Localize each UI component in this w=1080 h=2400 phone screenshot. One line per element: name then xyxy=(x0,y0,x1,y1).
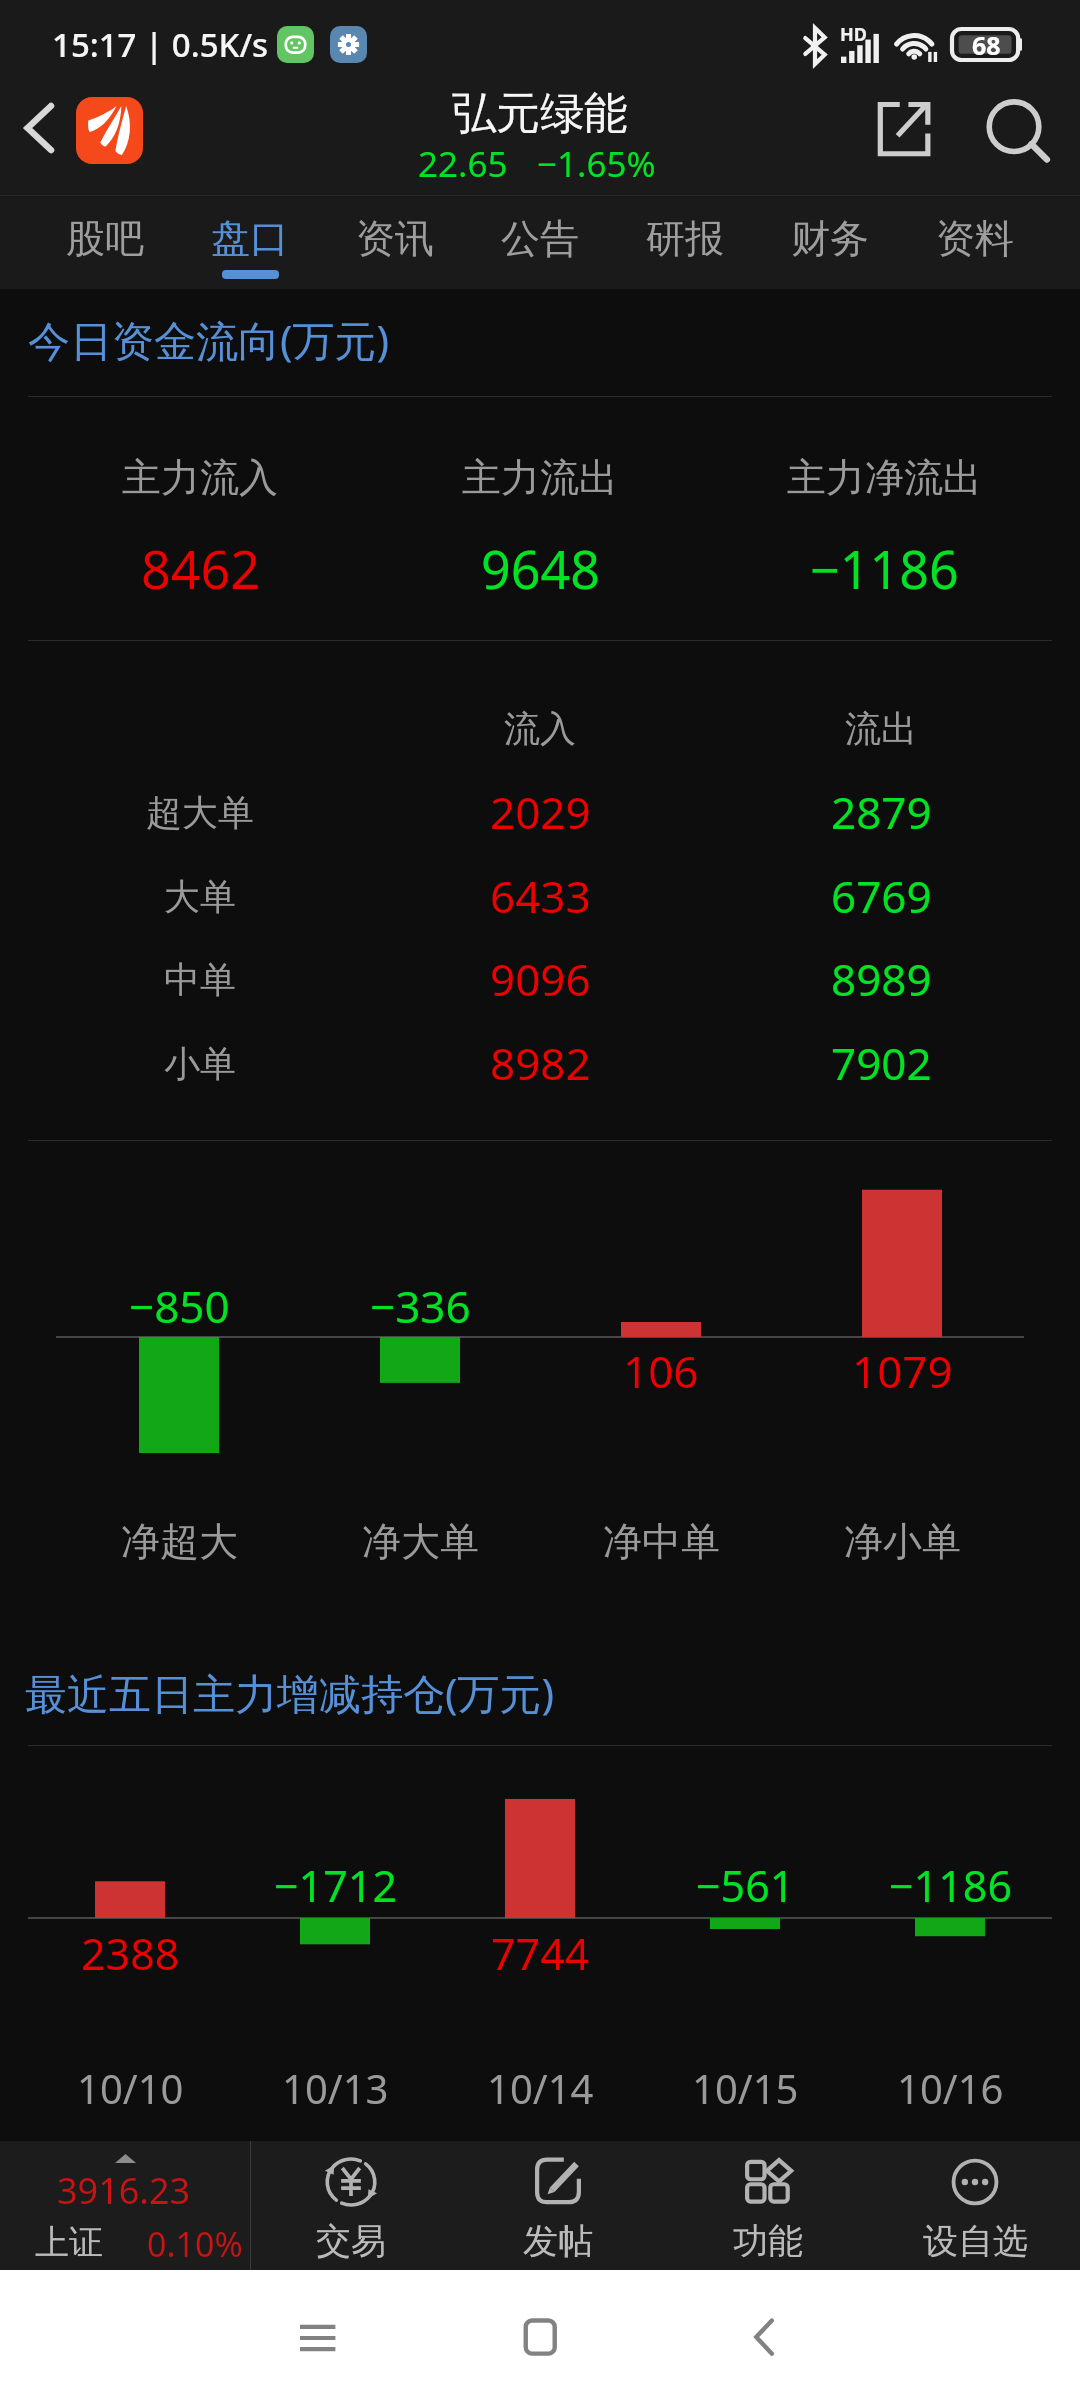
button[interactable]: App home xyxy=(76,97,143,164)
staticText: 9096 xyxy=(490,949,591,1009)
staticText: HD xyxy=(840,22,867,47)
button[interactable]: Recents xyxy=(205,2285,429,2390)
button[interactable]: 资讯 xyxy=(323,195,467,290)
staticText: 106 xyxy=(623,1341,699,1401)
staticText: 6433 xyxy=(490,866,591,926)
staticText: 流入 xyxy=(504,706,576,751)
staticText: 10/16 xyxy=(897,2061,1004,2115)
staticText: 超大单 xyxy=(146,790,254,835)
staticText: −336 xyxy=(370,1276,471,1336)
button[interactable]: 交易 xyxy=(251,2141,451,2270)
button[interactable]: Home xyxy=(428,2285,652,2390)
button[interactable]: 盘口 xyxy=(178,195,322,290)
button[interactable]: 3916.23 xyxy=(0,2141,250,2270)
staticText: 财务 xyxy=(791,214,869,263)
staticText: 1079 xyxy=(852,1341,953,1401)
staticText: 小单 xyxy=(164,1041,236,1086)
staticText: 10/13 xyxy=(282,2061,389,2115)
staticText: 2388 xyxy=(81,1924,180,1983)
staticText: 发帖 xyxy=(523,2219,593,2263)
staticText: 交易 xyxy=(316,2219,386,2263)
staticText: 设自选 xyxy=(923,2219,1028,2263)
staticText: 资料 xyxy=(936,214,1014,263)
staticText: 弘元绿能 xyxy=(452,86,628,141)
staticText: 7744 xyxy=(491,1924,590,1983)
staticText: 10/10 xyxy=(77,2061,184,2115)
staticText: 7902 xyxy=(831,1033,932,1093)
button[interactable]: Search xyxy=(969,93,1069,168)
button[interactable]: Back xyxy=(0,90,78,165)
button[interactable]: 资料 xyxy=(903,195,1047,290)
button[interactable]: Share xyxy=(856,90,950,165)
button[interactable]: 功能 xyxy=(668,2141,868,2270)
staticText: 净小单 xyxy=(844,1517,961,1566)
button[interactable]: 发帖 xyxy=(458,2141,658,2270)
button[interactable]: 设自选 xyxy=(875,2141,1075,2270)
staticText: 22.65 xyxy=(418,140,508,188)
button[interactable]: 公告 xyxy=(468,195,612,290)
staticText: 今日资金流向(万元) xyxy=(28,311,390,368)
staticText: 上证 xyxy=(35,2221,103,2264)
staticText: 0.10% xyxy=(147,2221,243,2267)
button[interactable]: 财务 xyxy=(758,195,902,290)
staticText: 公告 xyxy=(501,214,579,263)
staticText: 净大单 xyxy=(362,1517,479,1566)
staticText: 净超大 xyxy=(121,1517,238,1566)
staticText: 2029 xyxy=(490,782,591,842)
staticText: 主力流出 xyxy=(462,453,618,502)
staticText: −561 xyxy=(696,1856,795,1915)
staticText: −1712 xyxy=(274,1856,397,1915)
staticText: 资讯 xyxy=(356,214,434,263)
staticText: −850 xyxy=(129,1276,230,1336)
staticText: 中单 xyxy=(164,957,236,1002)
staticText: 6769 xyxy=(831,866,932,926)
staticText: 8982 xyxy=(490,1033,591,1093)
staticText: 研报 xyxy=(646,214,724,263)
staticText: −1186 xyxy=(810,533,959,604)
staticText: 功能 xyxy=(733,2219,803,2263)
staticText: 盘口 xyxy=(211,214,289,263)
staticText: 净中单 xyxy=(603,1517,720,1566)
staticText: −1.65% xyxy=(537,140,656,188)
staticText: 大单 xyxy=(164,874,236,919)
staticText: 10/15 xyxy=(692,2061,799,2115)
button[interactable]: 研报 xyxy=(613,195,757,290)
staticText: 8989 xyxy=(831,949,932,1009)
staticText: 最近五日主力增减持仓(万元) xyxy=(25,1664,555,1721)
staticText: 流出 xyxy=(845,706,917,751)
button[interactable]: 股吧 xyxy=(33,195,177,290)
staticText: 2879 xyxy=(831,782,932,842)
staticText: 15:17 | 0.5K/s xyxy=(52,22,269,67)
staticText: 68 xyxy=(972,28,1001,62)
staticText: 8462 xyxy=(141,533,260,604)
staticText: 主力净流出 xyxy=(787,453,982,502)
staticText: 股吧 xyxy=(66,214,144,263)
staticText: 9648 xyxy=(481,533,600,604)
staticText: −1186 xyxy=(889,1856,1012,1915)
button[interactable]: Back xyxy=(653,2285,877,2390)
staticText: 3916.23 xyxy=(57,2166,191,2215)
staticText: 主力流入 xyxy=(122,453,278,502)
staticText: 10/14 xyxy=(487,2061,594,2115)
